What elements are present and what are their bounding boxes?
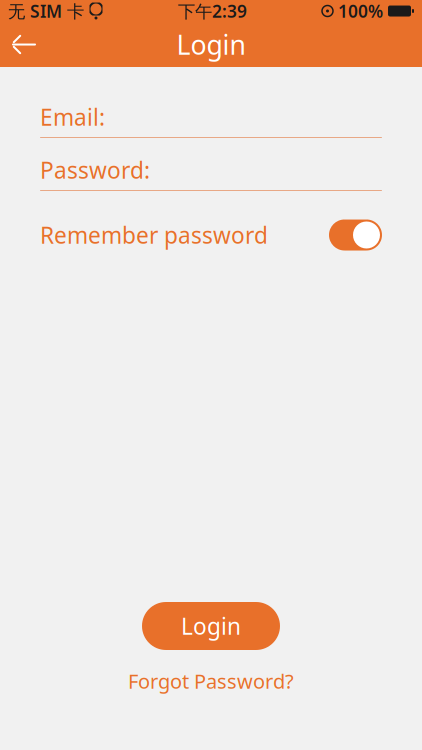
button[interactable]: Remember password [0,213,422,257]
staticText: 无 SIM 卡 [8,0,84,22]
staticText: 100% [338,0,383,22]
button[interactable]: Back [0,22,48,66]
button[interactable]: Forgot Password? [128,668,294,694]
staticText: Forgot Password? [128,668,294,694]
staticText: Login [181,611,241,641]
button[interactable]: Login [142,602,280,650]
staticText: 下午2:39 [178,0,247,22]
staticText: Remember password [40,220,268,250]
staticText: Email: [40,102,105,132]
staticText: Password: [40,155,150,185]
staticText: Login [176,27,245,62]
